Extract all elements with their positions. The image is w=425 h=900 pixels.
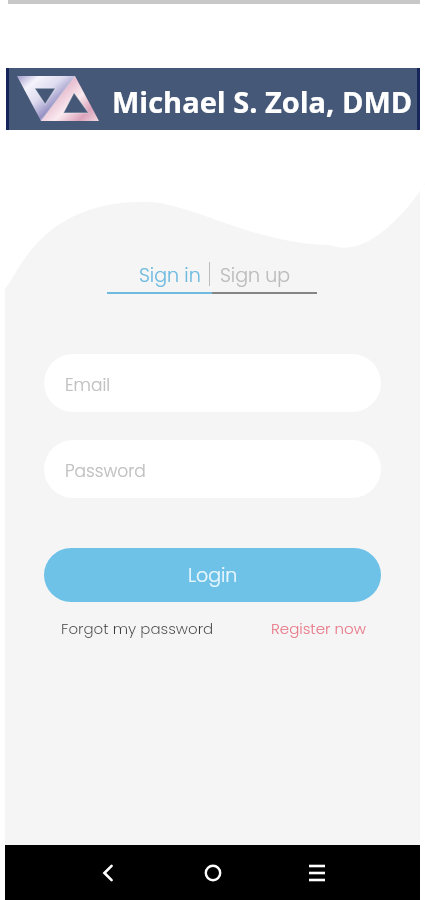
- button[interactable]: Michael S. Zola, DMD: [6, 68, 420, 130]
- button[interactable]: Email: [44, 354, 381, 412]
- button[interactable]: Home: [187, 850, 239, 896]
- button[interactable]: Menu: [291, 850, 343, 896]
- button[interactable]: Sign up: [212, 256, 317, 294]
- staticText: Email: [65, 373, 111, 397]
- button[interactable]: Sign in: [107, 256, 212, 294]
- button[interactable]: Register now: [265, 615, 372, 641]
- button[interactable]: Password: [44, 440, 381, 498]
- staticText: Sign in: [139, 262, 201, 289]
- staticText: Register now: [271, 618, 366, 639]
- button[interactable]: Forgot my password: [55, 615, 220, 641]
- button[interactable]: Back: [82, 850, 134, 896]
- staticText: Michael S. Zola, DMD: [112, 82, 413, 121]
- staticText: Password: [65, 459, 146, 483]
- staticText: Sign up: [220, 262, 291, 289]
- staticText: Login: [188, 562, 238, 589]
- staticText: Forgot my password: [61, 618, 214, 639]
- button[interactable]: Login: [44, 548, 381, 602]
